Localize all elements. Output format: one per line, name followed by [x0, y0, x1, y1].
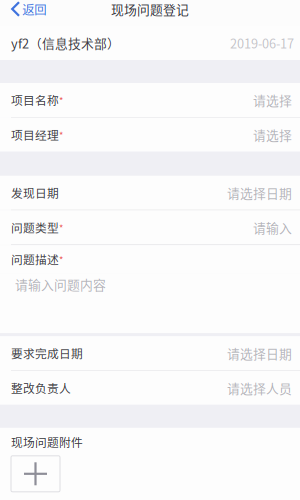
staticText: 请输入问题内容 — [15, 275, 106, 293]
staticText: 请选择日期 — [227, 344, 292, 362]
staticText: 发现日期 — [11, 184, 59, 201]
staticText: 现场问题附件 — [11, 433, 83, 450]
staticText: 请选择人员 — [227, 378, 292, 397]
staticText: * — [59, 128, 63, 141]
button[interactable]: 整改负责人 — [0, 371, 300, 405]
button[interactable]: 发现日期 — [0, 176, 300, 210]
staticText: 问题描述 — [11, 251, 59, 268]
staticText: 2019-06-17 — [230, 34, 294, 52]
staticText: 返回 — [22, 0, 46, 18]
staticText: 现场问题登记 — [111, 0, 189, 18]
button[interactable]: 要求完成日期 — [0, 336, 300, 370]
button[interactable]: 问题类型 — [0, 210, 300, 244]
staticText: * — [59, 221, 63, 234]
button[interactable]: 请输入问题内容 — [0, 273, 300, 333]
button[interactable]: 项目经理 — [0, 118, 300, 152]
button[interactable]: 项目名称 — [0, 83, 300, 117]
staticText: 请选择日期 — [227, 183, 292, 202]
staticText: yf2（信息技术部） — [11, 34, 120, 52]
staticText: * — [59, 93, 63, 107]
staticText: 要求完成日期 — [11, 345, 83, 362]
staticText: 请选择 — [253, 91, 292, 109]
staticText: 问题类型 — [11, 219, 59, 236]
staticText: * — [59, 252, 63, 266]
staticText: 请选择 — [253, 125, 292, 144]
button[interactable]: 返回 — [0, 0, 46, 18]
staticText: 项目经理 — [11, 126, 59, 143]
staticText: 请输入 — [253, 218, 292, 237]
button[interactable]: 添加附件 — [11, 456, 60, 492]
staticText: 整改负责人 — [11, 379, 71, 396]
staticText: 项目名称 — [11, 91, 59, 108]
